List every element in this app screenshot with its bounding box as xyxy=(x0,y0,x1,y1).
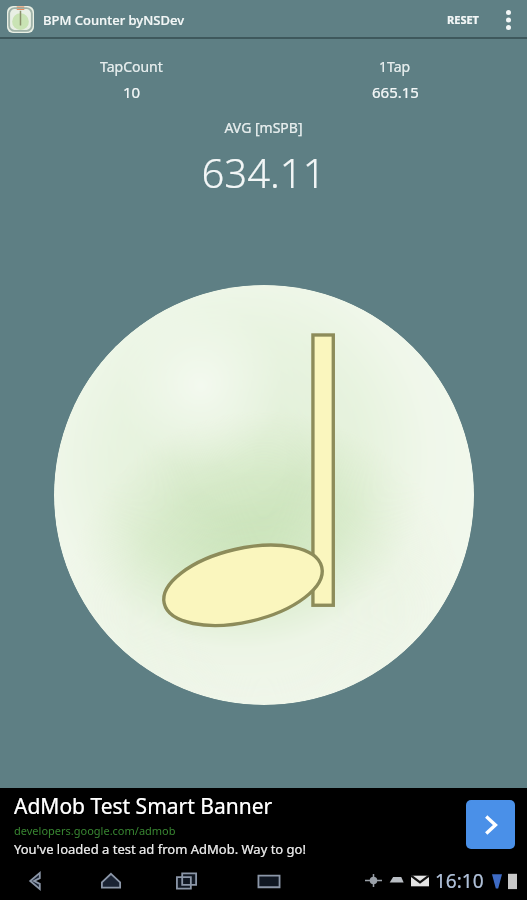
staticText: BPM Counter byNSDev xyxy=(43,11,185,29)
button[interactable]: App icon xyxy=(7,6,34,33)
button[interactable]: Open ad xyxy=(466,800,515,849)
button[interactable]: Recent apps xyxy=(170,864,204,898)
staticText: You've loaded a test ad from AdMob. Way … xyxy=(14,840,306,858)
staticText: 16:10 xyxy=(435,868,484,894)
staticText: 634.11 xyxy=(0,145,527,199)
staticText: 665.15 xyxy=(372,82,419,102)
button[interactable]: Home xyxy=(94,864,128,898)
button[interactable]: Keyboard xyxy=(252,864,286,898)
button[interactable]: Tap to count beat xyxy=(54,285,474,705)
staticText: AdMob Test Smart Banner xyxy=(14,792,273,821)
staticText: 1Tap xyxy=(379,57,411,76)
button[interactable]: AdMob Test Smart Banner xyxy=(0,788,527,861)
button[interactable]: Back xyxy=(18,864,52,898)
staticText: developers.google.com/admob xyxy=(14,823,176,838)
staticText: AVG [mSPB] xyxy=(0,118,527,137)
staticText: RESET xyxy=(447,12,479,27)
button[interactable]: RESET xyxy=(437,4,489,35)
button[interactable]: TapCount xyxy=(0,57,263,102)
button[interactable]: More options xyxy=(495,0,521,39)
staticText: TapCount xyxy=(100,57,163,76)
button[interactable]: 1Tap xyxy=(263,57,527,102)
staticText: 10 xyxy=(123,82,141,102)
